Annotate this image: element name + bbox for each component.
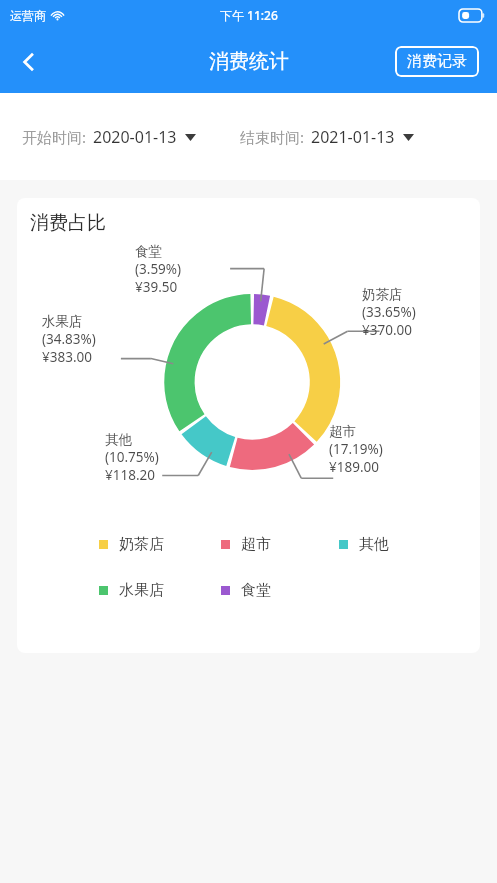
staticText: (33.65%) bbox=[362, 303, 416, 321]
staticText: (10.75%) bbox=[105, 448, 159, 466]
button[interactable]: 水果店 bbox=[99, 581, 221, 600]
staticText: 下午 11:26 bbox=[220, 7, 278, 23]
button[interactable]: 超市 bbox=[221, 535, 339, 554]
staticText: 超市 bbox=[241, 535, 271, 554]
staticText: 消费占比 bbox=[30, 211, 106, 235]
button[interactable]: 结束时间: bbox=[240, 122, 414, 152]
staticText: (17.19%) bbox=[329, 440, 383, 458]
staticText: 2021-01-13 bbox=[311, 126, 395, 148]
staticText: 奶茶店 bbox=[362, 286, 403, 303]
staticText: 开始时间: bbox=[22, 127, 87, 147]
staticText: 超市 bbox=[329, 423, 356, 440]
staticText: (34.83%) bbox=[42, 330, 96, 348]
staticText: 食堂 bbox=[135, 243, 162, 260]
staticText: ¥370.00 bbox=[362, 321, 412, 339]
staticText: 结束时间: bbox=[240, 127, 305, 147]
button[interactable]: 其他 bbox=[339, 535, 429, 554]
staticText: 2020-01-13 bbox=[93, 126, 177, 148]
staticText: (3.59%) bbox=[135, 260, 182, 278]
button[interactable]: 开始时间: bbox=[22, 122, 196, 152]
button[interactable]: 食堂 bbox=[221, 581, 339, 600]
staticText: 其他 bbox=[359, 535, 389, 554]
button[interactable]: 返回 bbox=[6, 39, 52, 85]
staticText: 运营商 bbox=[10, 8, 46, 23]
staticText: 消费统计 bbox=[209, 49, 289, 74]
staticText: 其他 bbox=[105, 431, 132, 448]
button[interactable]: 奶茶店 bbox=[99, 535, 221, 554]
staticText: 食堂 bbox=[241, 581, 271, 600]
button[interactable]: 消费记录 bbox=[395, 46, 479, 77]
staticText: 消费记录 bbox=[407, 52, 467, 71]
staticText: ¥189.00 bbox=[329, 458, 379, 476]
staticText: 水果店 bbox=[42, 313, 83, 330]
staticText: 奶茶店 bbox=[119, 535, 164, 554]
staticText: ¥383.00 bbox=[42, 348, 92, 366]
staticText: ¥118.20 bbox=[105, 466, 155, 484]
staticText: 水果店 bbox=[119, 581, 164, 600]
staticText: ¥39.50 bbox=[135, 278, 178, 296]
